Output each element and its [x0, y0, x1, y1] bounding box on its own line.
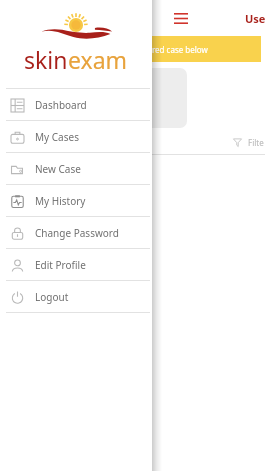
- button[interactable]: Edit Profile: [0, 249, 152, 280]
- staticText: Logout: [35, 290, 69, 304]
- button[interactable]: Dashboard: [0, 89, 152, 120]
- staticText: My Cases: [35, 130, 79, 144]
- button[interactable]: 0: [4, 68, 92, 128]
- staticText: exam: [68, 44, 128, 75]
- staticText: My History: [35, 194, 86, 208]
- staticText: RECENTLY ANSWERED CASES: [7, 114, 92, 122]
- button[interactable]: New Case: [0, 153, 152, 184]
- staticText: User Dashboard: [245, 11, 265, 26]
- button[interactable]: My History: [0, 185, 152, 216]
- staticText: Dashboard: [35, 98, 87, 112]
- button[interactable]: Change Password: [0, 217, 152, 248]
- staticText: 0: [73, 76, 79, 90]
- button[interactable]: My Cases: [0, 121, 152, 152]
- button[interactable]: Logout: [0, 281, 152, 312]
- staticText: Filter: [248, 137, 265, 148]
- button[interactable]: Filter: [230, 135, 244, 149]
- staticText: skin: [24, 44, 68, 75]
- staticText: Please click on the preferred case below: [58, 44, 208, 55]
- button[interactable]: Please click on the preferred case below: [4, 36, 261, 62]
- button[interactable]: [99, 68, 187, 128]
- button[interactable]: Open navigation menu: [170, 7, 192, 29]
- staticText: Edit Profile: [35, 258, 86, 272]
- staticText: New Case: [35, 162, 81, 176]
- staticText: Change Password: [35, 226, 119, 240]
